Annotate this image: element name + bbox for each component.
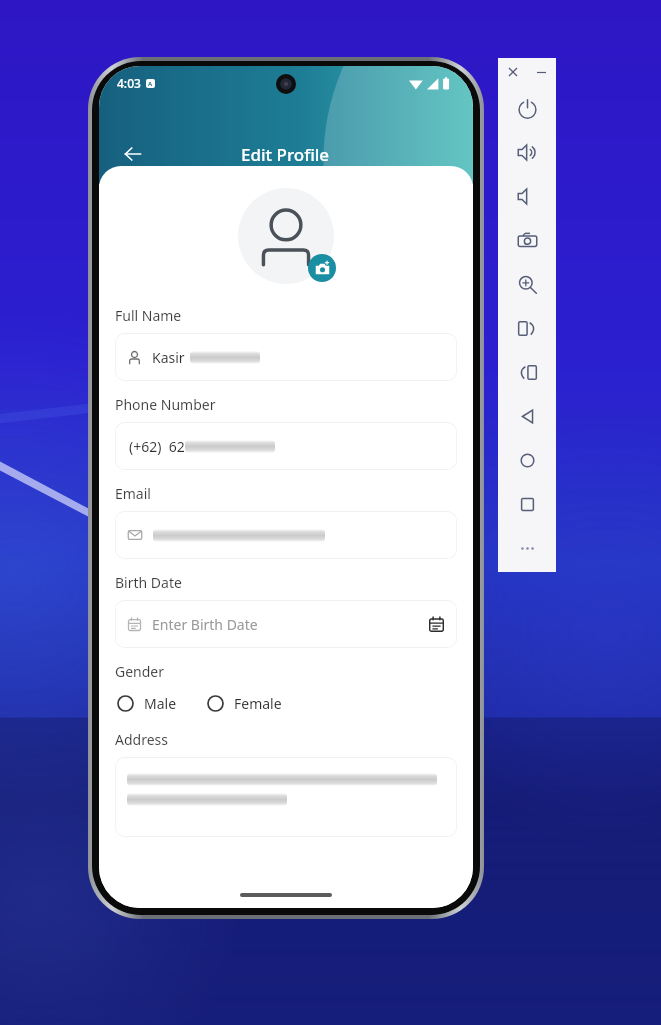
- staticText: Female: [234, 694, 282, 713]
- button[interactable]: Home: [498, 438, 556, 482]
- button[interactable]: Minimize: [533, 64, 549, 80]
- staticText: Edit Profile: [241, 143, 330, 166]
- staticText: A: [148, 80, 153, 88]
- button[interactable]: [115, 511, 457, 559]
- button[interactable]: Male: [115, 691, 179, 716]
- button[interactable]: Overview: [498, 482, 556, 526]
- button[interactable]: Volume up: [498, 130, 556, 174]
- button[interactable]: (+62) 62: [115, 422, 457, 470]
- staticText: Full Name: [115, 306, 182, 325]
- staticText: (+62) 62: [129, 437, 185, 456]
- staticText: Kasir: [152, 348, 185, 367]
- staticText: Address: [115, 730, 168, 749]
- staticText: Enter Birth Date: [152, 615, 258, 634]
- button[interactable]: Back: [115, 136, 151, 172]
- button[interactable]: Close: [505, 64, 521, 80]
- button[interactable]: Power: [498, 86, 556, 130]
- button[interactable]: Screenshot: [498, 218, 556, 262]
- staticText: Male: [144, 694, 177, 713]
- button[interactable]: Change photo: [308, 254, 336, 282]
- staticText: Email: [115, 484, 151, 503]
- button[interactable]: [115, 757, 457, 837]
- button[interactable]: Enter Birth Date: [115, 600, 457, 648]
- button[interactable]: Kasir: [115, 333, 457, 381]
- staticText: Gender: [115, 662, 165, 681]
- button[interactable]: Back: [498, 394, 556, 438]
- button[interactable]: More: [498, 526, 556, 570]
- button[interactable]: Volume down: [498, 174, 556, 218]
- staticText: Phone Number: [115, 395, 216, 414]
- staticText: 4:03: [117, 75, 141, 91]
- staticText: Birth Date: [115, 573, 182, 592]
- button[interactable]: Zoom: [498, 262, 556, 306]
- button[interactable]: Rotate left: [498, 350, 556, 394]
- button[interactable]: Female: [205, 691, 284, 716]
- button[interactable]: Rotate right: [498, 306, 556, 350]
